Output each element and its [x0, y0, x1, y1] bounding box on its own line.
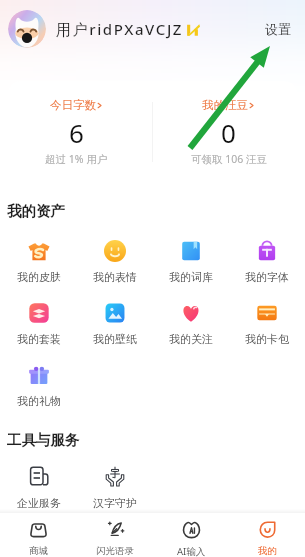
button[interactable]: 我的字体 — [229, 234, 305, 296]
staticText: 汉字守护 — [93, 496, 137, 510]
staticText: 6 — [69, 115, 84, 150]
staticText: 我的资产 — [7, 202, 65, 220]
staticText: 闪光语录 — [96, 545, 134, 557]
staticText: 我的卡包 — [245, 332, 289, 346]
staticText: 我的礼物 — [17, 394, 61, 408]
staticText: 我的 — [258, 545, 277, 557]
button[interactable]: 闪光语录 — [77, 513, 153, 557]
staticText: 我的套装 — [17, 332, 61, 346]
staticText: 我的关注 — [169, 332, 213, 346]
staticText: 用户ridPXaVCJZ — [56, 19, 184, 39]
staticText: 0 — [221, 115, 236, 150]
button[interactable]: 我的卡包 — [229, 296, 305, 358]
button[interactable]: 汉字守护 — [77, 460, 153, 518]
staticText: 我的壁纸 — [93, 332, 137, 346]
button[interactable]: 我的 — [229, 513, 305, 557]
staticText: 超过 1% 用户 — [45, 152, 108, 166]
staticText: 工具与服务 — [7, 431, 80, 449]
button[interactable]: 我的礼物 — [0, 358, 77, 420]
staticText: 我的字体 — [245, 270, 289, 284]
button[interactable]: 我的词库 — [153, 234, 229, 296]
button[interactable]: AI输入 — [153, 513, 229, 557]
button[interactable]: Profile avatar — [8, 10, 46, 48]
button[interactable]: 我的关注 — [153, 296, 229, 358]
button[interactable]: 今日字数 — [0, 81, 152, 183]
staticText: 我的表情 — [93, 270, 137, 284]
button[interactable]: 企业服务 — [0, 460, 77, 518]
staticText: 可领取 106 汪豆 — [191, 152, 267, 166]
staticText: 我的皮肤 — [17, 270, 61, 284]
staticText: 今日字数 — [50, 98, 96, 112]
button[interactable]: 设置 — [261, 17, 295, 41]
button[interactable]: 我的套装 — [0, 296, 77, 358]
button[interactable]: 我的壁纸 — [77, 296, 153, 358]
button[interactable]: 商城 — [0, 513, 77, 557]
button[interactable]: 我的皮肤 — [0, 234, 77, 296]
button[interactable]: 我的表情 — [77, 234, 153, 296]
staticText: 我的词库 — [169, 270, 213, 284]
staticText: 企业服务 — [17, 496, 61, 510]
staticText: 设置 — [265, 21, 291, 37]
staticText: 我的汪豆 — [202, 98, 248, 112]
staticText: 商城 — [29, 545, 48, 557]
button[interactable]: 我的汪豆 — [152, 81, 305, 183]
staticText: AI输入 — [177, 545, 206, 557]
